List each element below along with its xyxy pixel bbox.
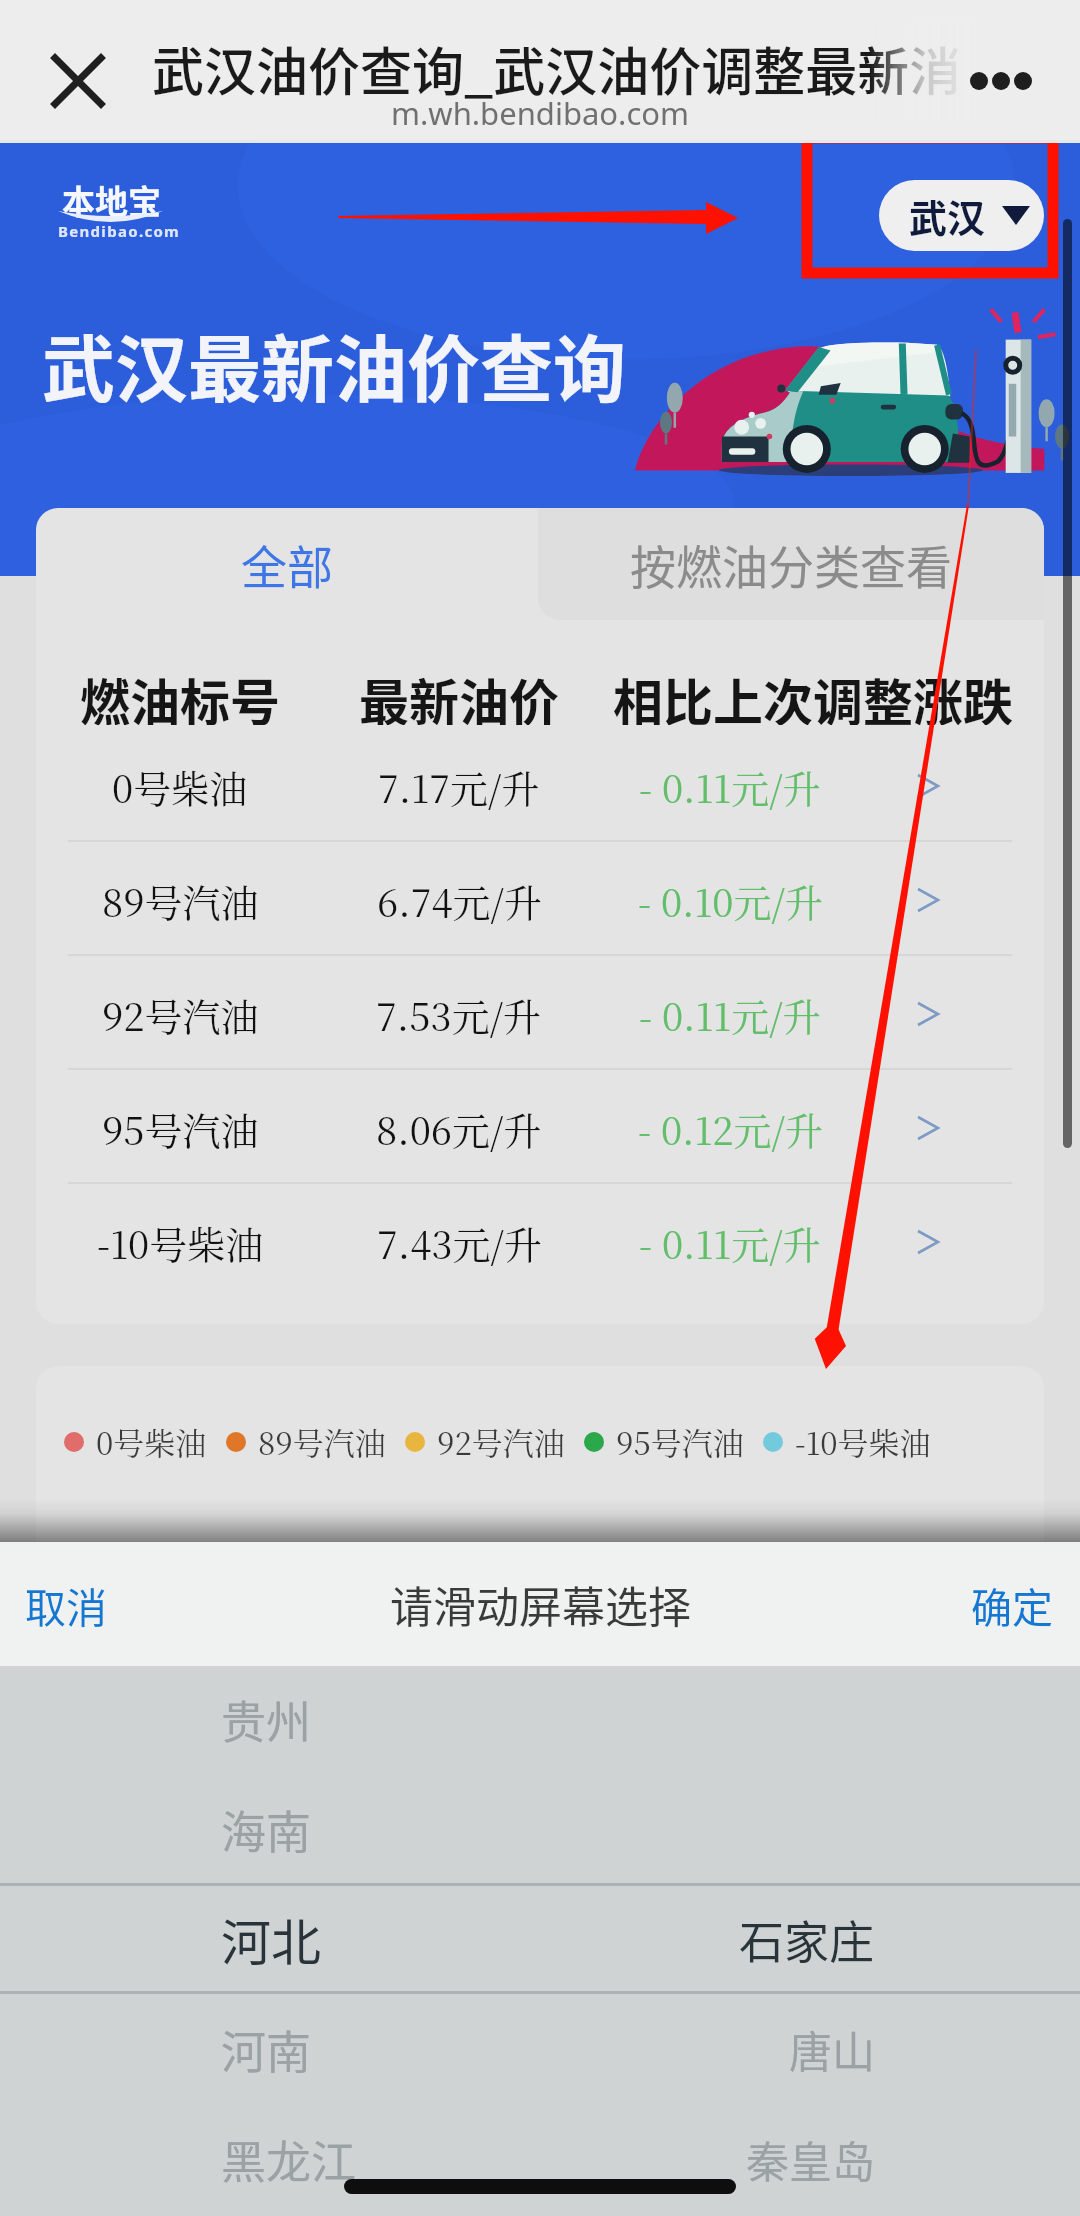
staticText: 7.53元/升 xyxy=(376,987,542,1042)
staticText: - 0.12元/升 xyxy=(638,1101,823,1156)
staticText: 92号汽油 xyxy=(102,987,259,1042)
button[interactable]: 0号柴油 xyxy=(36,729,1044,843)
button[interactable]: 海南 xyxy=(0,1774,1080,1884)
staticText: 8.06元/升 xyxy=(376,1101,542,1156)
staticText: 95号汽油 xyxy=(616,1419,744,1464)
button[interactable]: 贵州 xyxy=(0,1664,1080,1774)
staticText: 武汉最新油价查询 xyxy=(42,311,626,417)
button[interactable]: 确定 xyxy=(944,1542,1080,1666)
staticText: 相比上次调整涨跌 xyxy=(613,663,1013,725)
button[interactable]: 95号汽油 xyxy=(36,1071,1044,1185)
staticText: 黑龙江 xyxy=(221,2127,357,2192)
staticText: 7.43元/升 xyxy=(377,1215,542,1270)
staticText: 全部 xyxy=(241,531,333,598)
button[interactable]: Close xyxy=(40,43,116,119)
staticText: 0号柴油 xyxy=(112,759,248,814)
button[interactable]: More options xyxy=(955,43,1047,119)
button[interactable]: 河北 xyxy=(0,1884,1080,1994)
staticText: 唐山 xyxy=(789,2018,875,2080)
staticText: 秦皇岛 xyxy=(746,2128,875,2190)
button[interactable]: 武汉 xyxy=(879,180,1044,251)
button[interactable]: 按燃油分类查看 xyxy=(538,508,1044,620)
button[interactable]: 河南 xyxy=(0,1994,1080,2104)
staticText: 石家庄 xyxy=(739,1907,875,1972)
staticText: 请滑动屏幕选择 xyxy=(390,1573,691,1635)
button[interactable]: 全部 xyxy=(36,508,538,620)
button[interactable]: 黑龙江 xyxy=(0,2104,1080,2214)
staticText: 本地宝 xyxy=(62,176,161,224)
staticText: 武汉 xyxy=(909,188,986,243)
staticText: - 0.11元/升 xyxy=(639,759,821,814)
button[interactable]: -10号柴油 xyxy=(36,1185,1044,1299)
staticText: m.wh.bendibao.com xyxy=(0,92,1080,134)
staticText: 河北 xyxy=(221,1903,321,1975)
staticText: 最新油价 xyxy=(359,663,559,725)
staticText: 95号汽油 xyxy=(102,1101,259,1156)
staticText: 7.17元/升 xyxy=(378,759,540,814)
staticText: 92号汽油 xyxy=(437,1419,565,1464)
staticText: 贵州 xyxy=(221,1687,312,1752)
staticText: 海南 xyxy=(221,1797,312,1862)
staticText: 取消 xyxy=(25,1575,107,1634)
button[interactable]: 92号汽油 xyxy=(36,957,1044,1071)
staticText: 河南 xyxy=(221,2017,312,2082)
staticText: 确定 xyxy=(971,1575,1053,1634)
staticText: Bendibao.com xyxy=(58,221,178,241)
staticText: - 0.11元/升 xyxy=(639,1215,821,1270)
button[interactable]: 89号汽油 xyxy=(36,843,1044,957)
staticText: - 0.11元/升 xyxy=(639,987,821,1042)
staticText: -10号柴油 xyxy=(97,1215,264,1270)
staticText: 按燃油分类查看 xyxy=(630,531,952,598)
staticText: -10号柴油 xyxy=(795,1419,931,1464)
button[interactable]: 取消 xyxy=(0,1542,131,1666)
staticText: 武汉油价查询_武汉油价调整最新消 xyxy=(152,31,962,106)
staticText: 6.74元/升 xyxy=(377,873,542,928)
staticText: 89号汽油 xyxy=(258,1419,386,1464)
staticText: 0号柴油 xyxy=(96,1419,207,1464)
staticText: 89号汽油 xyxy=(102,873,259,928)
staticText: - 0.10元/升 xyxy=(638,873,823,928)
staticText: 燃油标号 xyxy=(80,663,280,725)
